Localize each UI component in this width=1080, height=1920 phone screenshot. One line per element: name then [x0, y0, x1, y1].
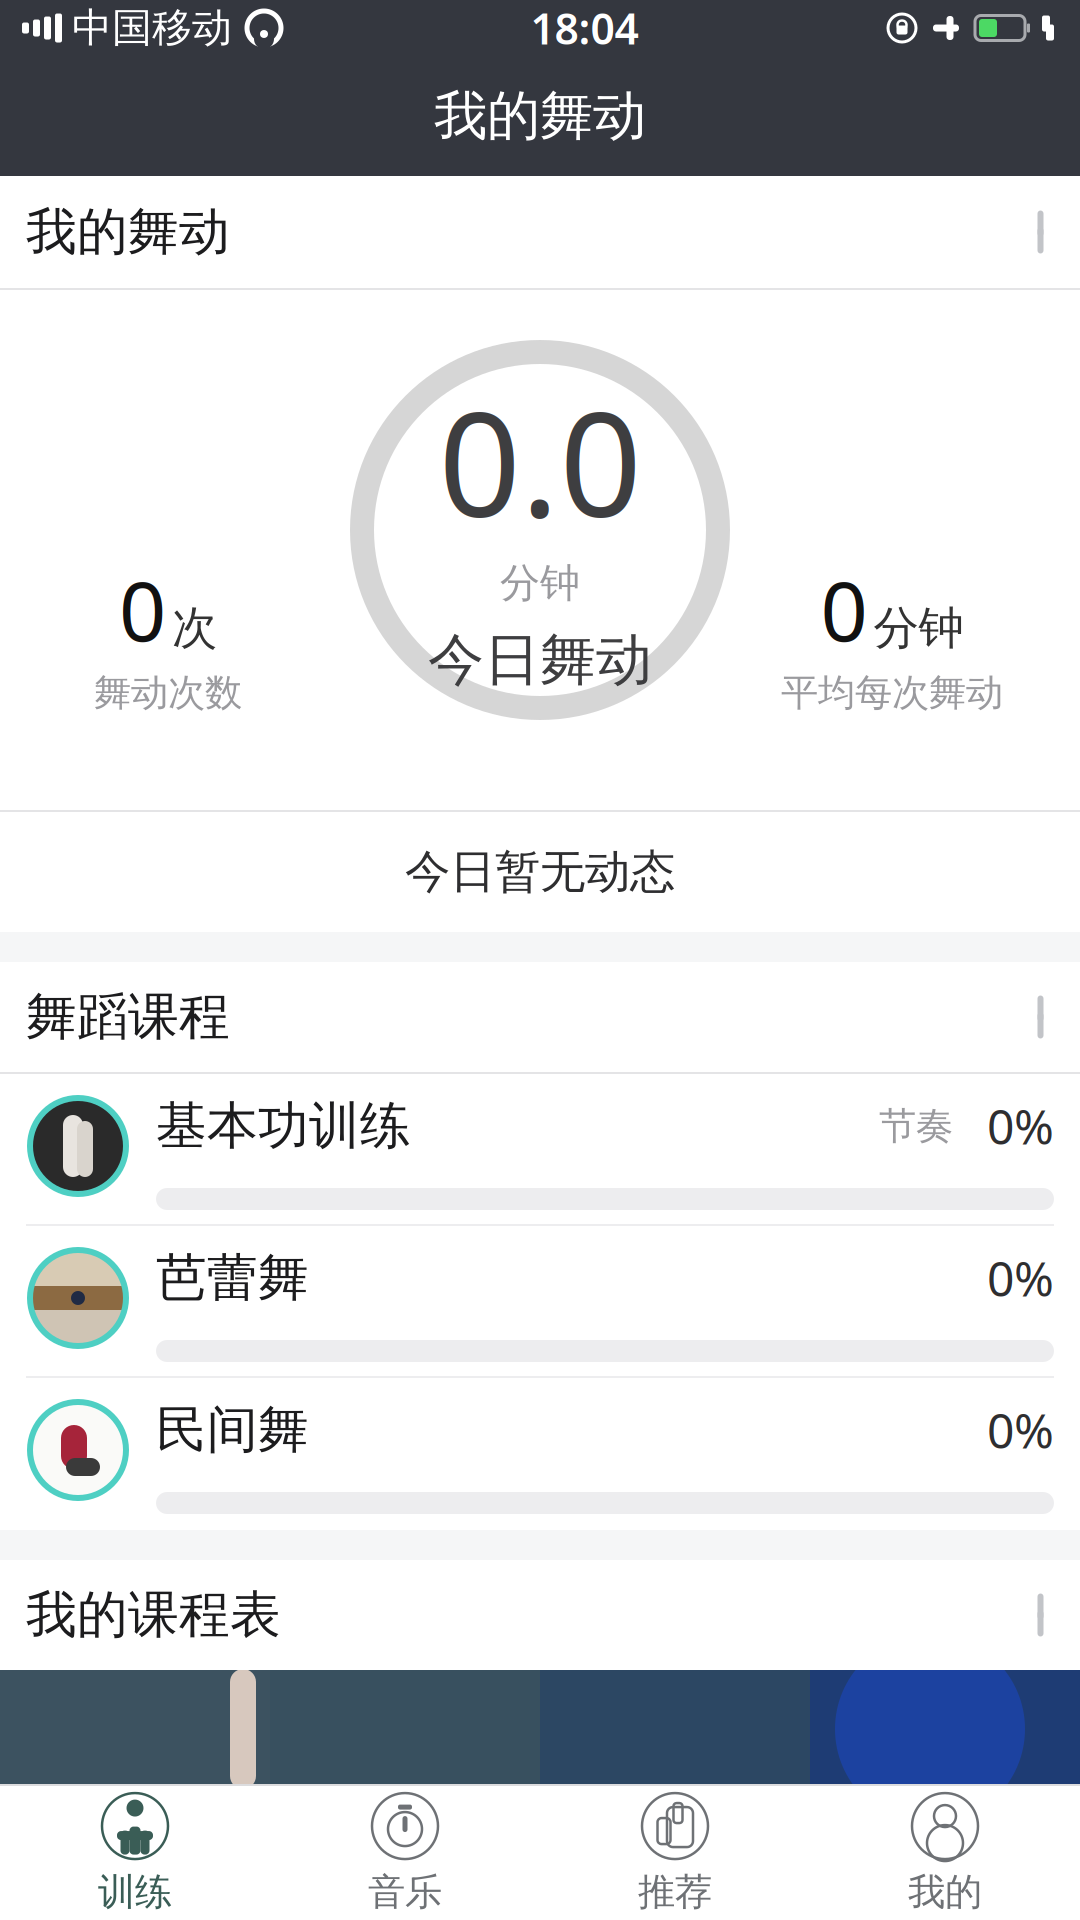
button[interactable]: 舞蹈课程 — [0, 962, 1080, 1072]
staticText: 我的 — [908, 1869, 982, 1915]
staticText: 我的舞动 — [26, 201, 230, 263]
staticText: 节奏 — [879, 1103, 953, 1149]
staticText: 芭蕾舞 — [156, 1247, 309, 1309]
staticText: 舞动次数 — [94, 670, 242, 716]
staticText: 0 — [820, 554, 867, 664]
staticText: 分钟 — [873, 600, 963, 656]
staticText: 音乐 — [368, 1869, 442, 1915]
staticText: 今日舞动 — [428, 626, 652, 695]
button[interactable]: 芭蕾舞 — [0, 1226, 1080, 1378]
staticText: 平均每次舞动 — [781, 670, 1003, 716]
staticText: 今日暂无动态 — [405, 844, 675, 900]
staticText: 我的课程表 — [26, 1584, 281, 1646]
staticText: 0% — [987, 1246, 1054, 1310]
button[interactable]: 推荐 — [540, 1786, 810, 1920]
staticText: 我的舞动 — [434, 83, 646, 149]
button[interactable]: 我的课程表 — [0, 1560, 1080, 1670]
staticText: 基本功训练 — [156, 1095, 411, 1157]
staticText: 0% — [987, 1398, 1054, 1462]
button[interactable]: 我的舞动 — [0, 176, 1080, 288]
button[interactable]: 音乐 — [270, 1786, 540, 1920]
staticText: 18:04 — [530, 0, 638, 56]
button[interactable]: 训练 — [0, 1786, 270, 1920]
staticText: 0% — [987, 1094, 1054, 1158]
button[interactable]: 民间舞 — [0, 1378, 1080, 1530]
button[interactable]: 基本功训练 — [0, 1074, 1080, 1226]
staticText: 训练 — [98, 1869, 172, 1915]
button[interactable]: 我的 — [810, 1786, 1080, 1920]
staticText: 中国移动 — [72, 3, 232, 52]
staticText: 分钟 — [500, 559, 580, 608]
staticText: 次 — [172, 600, 217, 656]
staticText: 0.0 — [438, 365, 641, 557]
staticText: 民间舞 — [156, 1399, 309, 1461]
staticText: 舞蹈课程 — [26, 986, 230, 1048]
staticText: 推荐 — [638, 1869, 712, 1915]
staticText: 0 — [119, 554, 166, 664]
